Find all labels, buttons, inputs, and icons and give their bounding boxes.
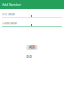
staticText: Add Number — [2, 3, 21, 7]
staticText: ADD — [29, 46, 35, 49]
staticText: Second number — [2, 22, 17, 25]
staticText: First number — [2, 13, 15, 16]
staticText: 0.0 — [26, 55, 31, 59]
button[interactable]: ADD — [26, 45, 37, 50]
